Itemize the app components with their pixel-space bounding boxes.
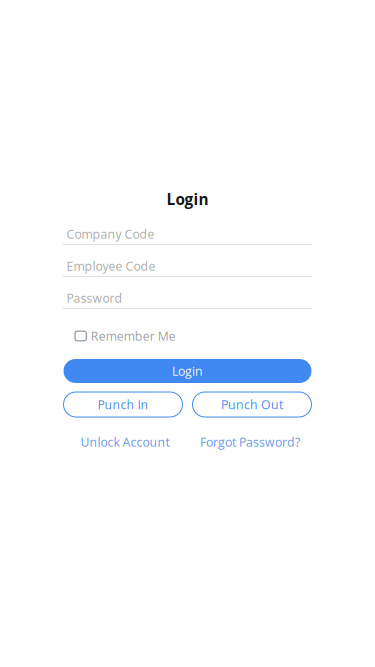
staticText: Password bbox=[66, 290, 122, 306]
button[interactable]: Unlock Account bbox=[62, 435, 187, 449]
button[interactable]: Forgot Password? bbox=[187, 435, 312, 449]
staticText: Login bbox=[166, 189, 208, 209]
staticText: Punch Out bbox=[221, 396, 283, 413]
staticText: Remember Me bbox=[91, 328, 176, 344]
staticText: Employee Code bbox=[66, 258, 155, 274]
button[interactable]: Login bbox=[63, 359, 311, 383]
staticText: Forgot Password? bbox=[200, 434, 300, 450]
button[interactable]: Employee Code bbox=[62, 259, 312, 277]
staticText: Company Code bbox=[66, 226, 154, 242]
button[interactable]: Punch Out bbox=[192, 392, 311, 417]
staticText: Unlock Account bbox=[80, 434, 169, 450]
button[interactable]: Company Code bbox=[62, 227, 312, 245]
staticText: Punch In bbox=[97, 396, 148, 413]
staticText: Login bbox=[172, 363, 203, 379]
button[interactable]: Punch In bbox=[63, 392, 182, 417]
button[interactable]: Remember Me bbox=[62, 329, 312, 343]
button[interactable]: Password bbox=[62, 291, 312, 309]
